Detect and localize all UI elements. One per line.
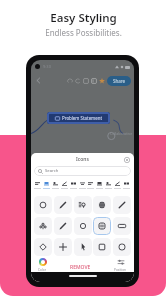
- button[interactable]: Icon 9: [93, 217, 111, 235]
- button[interactable]: Category 2: [43, 181, 50, 189]
- staticText: Share: [113, 78, 126, 84]
- button[interactable]: Icon 1: [34, 196, 52, 214]
- button[interactable]: Category 4: [61, 181, 68, 189]
- button[interactable]: Icon 2: [54, 196, 72, 214]
- button[interactable]: Icon 15: [113, 238, 131, 256]
- button[interactable]: Share: [107, 76, 131, 86]
- button[interactable]: Close: [121, 154, 132, 165]
- button[interactable]: Icon 5: [113, 196, 131, 214]
- button[interactable]: REMOVE: [66, 260, 95, 271]
- button[interactable]: Favourite: [99, 78, 105, 84]
- button[interactable]: Position: [111, 258, 130, 272]
- button[interactable]: Icon 6: [34, 217, 52, 235]
- button[interactable]: Redo: [75, 78, 81, 84]
- button[interactable]: Icon 11: [34, 238, 52, 256]
- staticText: Position: [114, 268, 127, 272]
- button[interactable]: Icon 3: [74, 196, 92, 214]
- button[interactable]: Back: [33, 75, 44, 86]
- staticText: Easy Styling: [50, 10, 117, 26]
- button[interactable]: Icon 12: [54, 238, 72, 256]
- staticText: Search: [45, 168, 59, 174]
- button[interactable]: Duplicate: [83, 78, 89, 84]
- button[interactable]: Layers: [91, 78, 97, 84]
- button[interactable]: Category 9: [105, 181, 112, 189]
- button[interactable]: Search: [34, 166, 131, 176]
- button[interactable]: Icon 8: [74, 217, 92, 235]
- button[interactable]: Problem Statement: [47, 112, 110, 124]
- staticText: Collaborative: [110, 131, 133, 136]
- staticText: Icons: [76, 156, 89, 163]
- button[interactable]: Undo: [67, 78, 73, 84]
- button[interactable]: Category 3: [52, 181, 59, 189]
- button[interactable]: Category 10: [114, 181, 121, 189]
- button[interactable]: Category 1: [34, 181, 41, 189]
- staticText: 9:30: [43, 64, 51, 69]
- staticText: Color: [38, 268, 47, 272]
- button[interactable]: Category 5: [70, 181, 77, 189]
- button[interactable]: Icon 13: [74, 238, 92, 256]
- button[interactable]: Color: [35, 258, 50, 272]
- button[interactable]: Icon 14: [93, 238, 111, 256]
- staticText: REMOVE: [70, 264, 91, 271]
- button[interactable]: Icon 7: [54, 217, 72, 235]
- button[interactable]: Icon 10: [113, 217, 131, 235]
- staticText: Endless Possibilities.: [45, 27, 122, 38]
- staticText: Problem Statement: [62, 115, 102, 121]
- button[interactable]: Category 6: [79, 181, 86, 189]
- button[interactable]: Icon 4: [93, 196, 111, 214]
- button[interactable]: Category 7: [87, 181, 94, 189]
- button[interactable]: Category 8: [96, 181, 103, 189]
- button[interactable]: Category 11: [123, 181, 130, 189]
